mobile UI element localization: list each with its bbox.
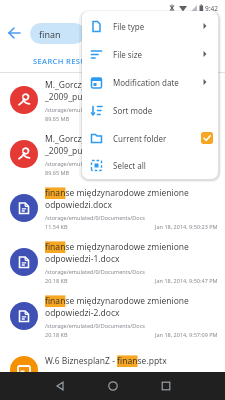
staticText: Current folder	[113, 133, 167, 144]
staticText: 1.82 MB	[45, 379, 66, 386]
staticText: _2009_publiczne.pdf	[45, 91, 126, 103]
staticText: File type	[113, 21, 145, 32]
button[interactable]: File size	[82, 40, 218, 68]
staticText: Jan 18, 2014, 9:57:09 PM	[155, 331, 218, 338]
staticText: /storage/emulated/0/Documents/Docs	[45, 370, 145, 377]
staticText: finanse międzynarodowe zmienione	[45, 241, 189, 253]
staticText: _2009_publiczne.pdf	[45, 145, 126, 157]
staticText: finanse międzynarodowe zmienione	[45, 295, 189, 307]
button[interactable]: Sort mode	[82, 96, 218, 124]
button[interactable]: File type	[82, 12, 218, 40]
staticText: finan	[39, 28, 61, 40]
button[interactable]: finanse międzynarodowe zmienione	[0, 235, 225, 289]
staticText: 11.54 KB	[45, 223, 68, 230]
staticText: /storage/emulated/0/Documents	[45, 160, 131, 167]
staticText: M._Gorczynska_Finanse	[45, 79, 139, 91]
staticText: /storage/emulated/0/Documents	[45, 106, 131, 113]
button[interactable]	[139, 372, 192, 400]
staticText: Modification date	[113, 77, 179, 88]
button[interactable]: M._Gorczynska_Finanse	[0, 73, 225, 127]
staticText: Select all	[113, 160, 146, 171]
button[interactable]: Current folder	[82, 124, 218, 152]
button[interactable]: finanse międzynarodowe zmienione	[0, 289, 225, 343]
staticText: finanse międzynarodowe zmienione	[45, 187, 189, 199]
button[interactable]: M._Gorczynska_Finanse	[0, 127, 225, 181]
staticText: 89.65 MB	[45, 169, 70, 176]
button[interactable]: W.6 BiznesplanZ - finanse.pptx	[0, 343, 225, 397]
staticText: Jan 18, 2014, 9:50:47 PM	[155, 277, 218, 284]
staticText: M._Gorczynska_Finanse	[45, 133, 139, 145]
staticText: /storage/emulated/0/Documents/Docs	[45, 268, 145, 275]
staticText: /storage/emulated/0/Documents/Docs	[45, 214, 145, 221]
staticText: 20.18 KB	[45, 331, 68, 338]
staticText: 9:42	[205, 4, 218, 13]
staticText: Jan 18, 2014, 9:50:23 PM	[155, 223, 218, 230]
staticText: 20.18 KB	[45, 277, 68, 284]
staticText: odpowiedzi-2.docx	[45, 307, 120, 319]
staticText: SEARCH RESULTS	[33, 56, 100, 66]
staticText: Jan 18, 2014, 9:58:12 PM	[155, 379, 218, 386]
button[interactable]	[33, 372, 86, 400]
staticText: W.6 BiznesplanZ - finanse.pptx	[45, 355, 167, 367]
staticText: /storage/emulated/0/Documents/Docs	[45, 322, 145, 329]
staticText: File size	[113, 49, 143, 60]
button[interactable]: Modification date	[82, 68, 218, 96]
staticText: odpowiedzi.docx	[45, 199, 112, 211]
staticText: Sort mode	[113, 105, 153, 116]
button[interactable]	[8, 26, 22, 40]
button[interactable]	[86, 372, 139, 400]
button[interactable]: finanse międzynarodowe zmienione	[0, 181, 225, 235]
button[interactable]: Select all	[82, 152, 218, 178]
staticText: 89.65 MB	[45, 115, 70, 122]
staticText: odpowiedzi-1.docx	[45, 253, 120, 265]
button[interactable]: finan	[30, 23, 85, 44]
